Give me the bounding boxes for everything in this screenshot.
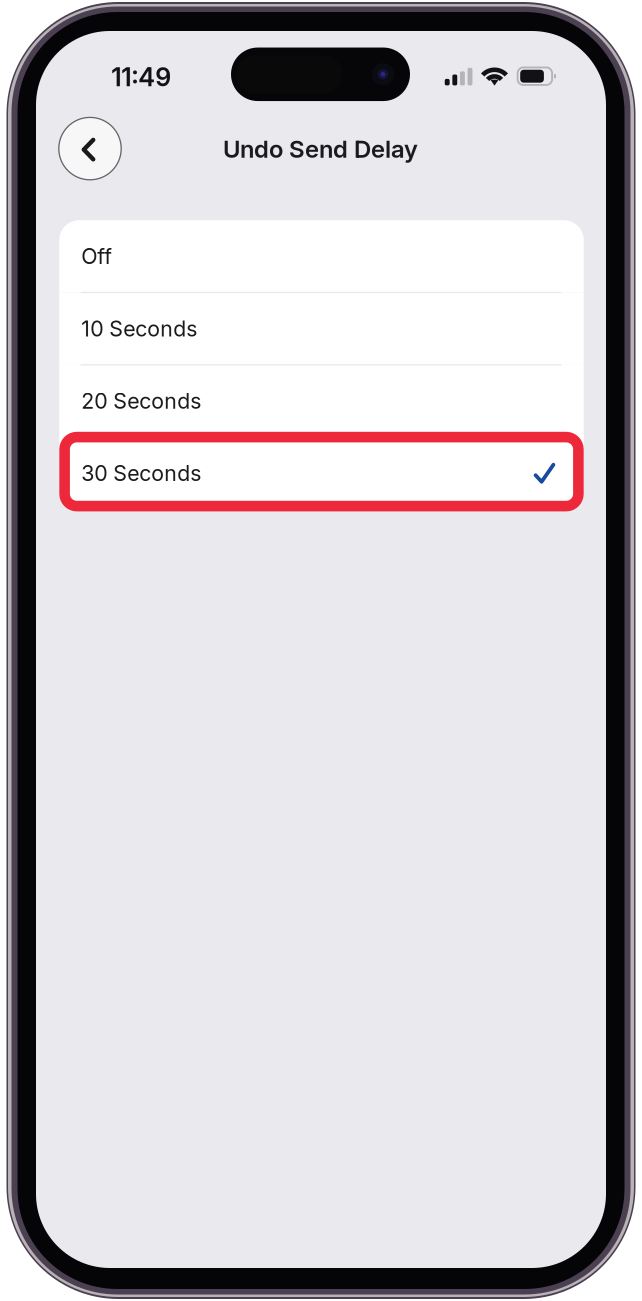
button[interactable]: 10 Seconds bbox=[59, 292, 584, 365]
staticText: 11:49 bbox=[111, 62, 171, 92]
button[interactable]: Off bbox=[59, 220, 584, 292]
staticText: Undo Send Delay bbox=[223, 134, 418, 163]
staticText: 30 Seconds bbox=[81, 460, 201, 486]
staticText: 10 Seconds bbox=[81, 316, 197, 341]
button[interactable]: 20 Seconds bbox=[59, 365, 584, 437]
staticText: 20 Seconds bbox=[81, 388, 201, 414]
button[interactable]: Back bbox=[58, 117, 121, 180]
staticText: Off bbox=[81, 243, 112, 269]
button[interactable]: 30 Seconds bbox=[59, 437, 584, 509]
